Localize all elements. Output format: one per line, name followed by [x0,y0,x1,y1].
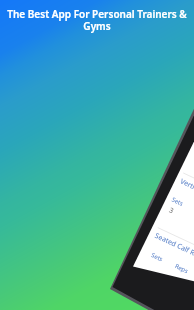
staticText: The Best App For Personal Trainers & Gym… [2,7,192,33]
